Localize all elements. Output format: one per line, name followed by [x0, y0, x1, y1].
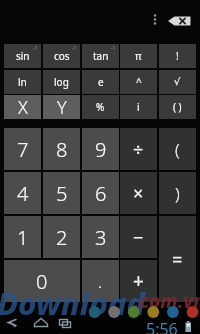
staticText: ! [176, 49, 179, 63]
staticText: 1 [17, 224, 29, 251]
button[interactable]: 5 [43, 172, 80, 214]
staticText: -1 [111, 45, 116, 52]
staticText: tan [93, 49, 109, 63]
button[interactable]: × [120, 172, 157, 214]
button[interactable]: log [43, 70, 80, 94]
staticText: 5:56 [146, 318, 178, 334]
staticText: √ [174, 76, 181, 88]
staticText: 6 [95, 180, 107, 207]
staticText: e [98, 75, 104, 89]
button[interactable]: % [82, 95, 119, 119]
button[interactable]: ! [159, 44, 196, 68]
staticText: 0 [36, 268, 48, 295]
button[interactable]: ^ [120, 70, 157, 94]
staticText: × [133, 181, 144, 206]
staticText: Download [0, 282, 146, 324]
button[interactable]: i [120, 95, 157, 119]
staticText: .com.vn [134, 288, 200, 314]
staticText: 9 [95, 136, 107, 163]
staticText: 5 [56, 180, 68, 207]
staticText: ÷ [133, 137, 144, 162]
button[interactable]: 9 [82, 128, 119, 170]
button[interactable]: 2 [43, 216, 80, 258]
button[interactable]: 1 [4, 216, 41, 258]
button[interactable]: + [120, 260, 157, 302]
staticText: i [137, 100, 140, 114]
staticText: . [98, 270, 103, 293]
staticText: sin [16, 49, 30, 63]
staticText: 7 [17, 136, 29, 163]
button[interactable]: 4 [4, 172, 41, 214]
button[interactable]: Y [43, 95, 80, 119]
button[interactable]: sin [4, 44, 41, 68]
staticText: = [172, 247, 183, 272]
button[interactable]: ( [159, 128, 196, 170]
staticText: 4 [17, 180, 29, 207]
button[interactable]: ÷ [120, 128, 157, 170]
button[interactable]: . [82, 260, 119, 302]
staticText: 8 [56, 136, 68, 163]
button[interactable]: ( ) [159, 95, 196, 119]
button[interactable]: e [82, 70, 119, 94]
button[interactable]: 3 [82, 216, 119, 258]
button[interactable]: 7 [4, 128, 41, 170]
button[interactable]: 6 [82, 172, 119, 214]
staticText: Y [57, 95, 67, 119]
button[interactable]: X [4, 95, 41, 119]
staticText: cos [54, 49, 70, 63]
button[interactable]: 8 [43, 128, 80, 170]
staticText: ( ) [173, 100, 182, 114]
button[interactable]: tan [82, 44, 119, 68]
staticText: ( [175, 138, 180, 161]
staticText: + [133, 268, 144, 294]
staticText: % [96, 100, 105, 114]
staticText: -1 [72, 45, 77, 52]
staticText: ^ [136, 75, 142, 89]
staticText: ) [175, 182, 180, 205]
staticText: log [54, 75, 69, 89]
button[interactable]: = [159, 216, 196, 302]
button[interactable]: 0 [4, 260, 80, 302]
staticText: 2 [56, 224, 68, 251]
staticText: X [18, 95, 28, 119]
button[interactable]: ln [4, 70, 41, 94]
button[interactable]: π [120, 44, 157, 68]
staticText: − [133, 225, 144, 250]
staticText: ln [18, 75, 27, 89]
button[interactable]: cos [43, 44, 80, 68]
staticText: 3 [95, 224, 107, 251]
staticText: -1 [33, 45, 38, 52]
staticText: π [135, 49, 142, 63]
button[interactable]: − [120, 216, 157, 258]
button[interactable]: ) [159, 172, 196, 214]
button[interactable]: √ [159, 70, 196, 94]
